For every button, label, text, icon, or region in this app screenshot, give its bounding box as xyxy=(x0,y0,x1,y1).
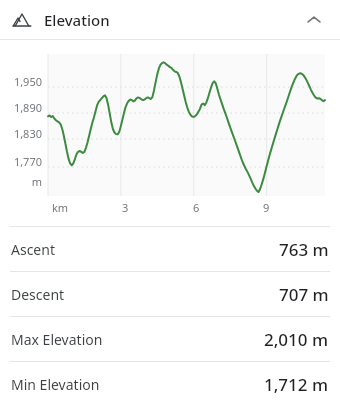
staticText: Elevation xyxy=(44,10,110,30)
staticText: Descent xyxy=(11,285,65,304)
button[interactable]: Elevation xyxy=(0,0,340,39)
staticText: 2,010 m xyxy=(264,328,329,351)
staticText: 3 xyxy=(122,200,129,215)
staticText: Max Elevation xyxy=(11,330,103,349)
button[interactable]: Collapse xyxy=(302,8,326,32)
button[interactable]: Min Elevation xyxy=(0,362,340,406)
button[interactable]: Descent xyxy=(0,272,340,316)
staticText: 1,890 xyxy=(0,100,42,115)
staticText: 1,770 xyxy=(0,154,42,169)
staticText: Ascent xyxy=(11,240,55,259)
staticText: 1,950 xyxy=(0,74,42,89)
button[interactable]: Ascent xyxy=(0,227,340,271)
staticText: Min Elevation xyxy=(11,375,100,394)
staticText: 6 xyxy=(193,200,200,215)
button[interactable]: Max Elevation xyxy=(0,317,340,361)
staticText: 707 m xyxy=(279,283,329,306)
staticText: m xyxy=(0,174,42,189)
staticText: 763 m xyxy=(279,238,329,261)
staticText: 1,830 xyxy=(0,126,42,141)
staticText: 1,712 m xyxy=(264,373,329,396)
staticText: 9 xyxy=(263,200,270,215)
staticText: km xyxy=(52,200,69,215)
